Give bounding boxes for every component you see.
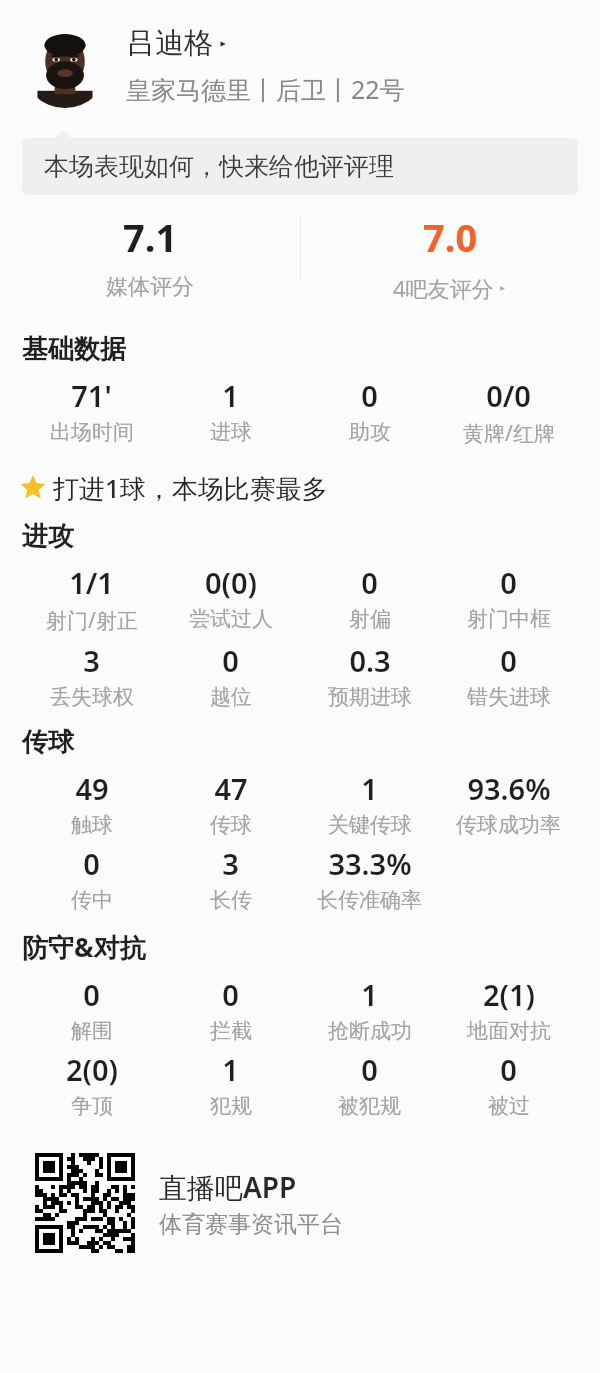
button[interactable]: 吕迪格: [0, 0, 600, 130]
staticText: 直播吧APP: [159, 1168, 297, 1206]
staticText: 33.3%: [328, 844, 412, 883]
staticText: 出场时间: [50, 419, 134, 445]
staticText: 1/1: [69, 563, 114, 602]
staticText: 触球: [71, 812, 113, 838]
staticText: 7.0: [423, 211, 478, 263]
staticText: 射门/射正: [46, 606, 138, 635]
staticText: 0: [361, 376, 378, 415]
staticText: 解围: [71, 1018, 113, 1044]
staticText: 传中: [71, 887, 113, 913]
button[interactable]: 7.1: [0, 211, 300, 315]
staticText: 3: [222, 844, 239, 883]
staticText: 0/0: [486, 376, 531, 415]
staticText: 射门中框: [467, 606, 551, 632]
staticText: 射偏: [349, 606, 391, 632]
staticText: 错失进球: [467, 684, 551, 710]
staticText: 传球: [22, 726, 74, 759]
staticText: 71': [71, 376, 112, 415]
staticText: 黄牌/红牌: [463, 419, 555, 448]
staticText: 丢失球权: [50, 684, 134, 710]
staticText: 本场表现如何，快来给他评评理: [44, 151, 394, 182]
staticText: 0: [222, 641, 239, 680]
staticText: 0: [83, 975, 100, 1014]
staticText: 2(0): [66, 1050, 118, 1089]
staticText: 防守&对抗: [22, 929, 146, 965]
staticText: 尝试过人: [189, 606, 273, 632]
staticText: 0: [500, 563, 517, 602]
staticText: 进攻: [22, 520, 74, 553]
staticText: 长传: [210, 887, 252, 913]
staticText: 1: [361, 769, 378, 808]
staticText: 93.6%: [467, 769, 551, 808]
staticText: 1: [222, 376, 239, 415]
staticText: 打进1球，本场比赛最多: [53, 470, 328, 506]
staticText: 0: [500, 641, 517, 680]
staticText: 0: [500, 1050, 517, 1089]
staticText: 犯规: [210, 1093, 252, 1119]
staticText: 1: [222, 1050, 239, 1089]
button[interactable]: 7.0: [300, 211, 600, 315]
staticText: 长传准确率: [317, 887, 422, 913]
staticText: 4吧友评分: [393, 273, 494, 303]
staticText: 关键传球: [328, 812, 412, 838]
staticText: 被犯规: [338, 1093, 401, 1119]
staticText: 0: [83, 844, 100, 883]
staticText: 预期进球: [328, 684, 412, 710]
staticText: 媒体评分: [106, 273, 194, 301]
staticText: 0: [361, 563, 378, 602]
staticText: 助攻: [349, 419, 391, 445]
staticText: 被过: [488, 1093, 530, 1119]
staticText: 皇家马德里丨后卫丨22号: [126, 72, 405, 106]
staticText: 传球成功率: [456, 812, 561, 838]
staticText: 3: [83, 641, 100, 680]
staticText: 0(0): [205, 563, 257, 602]
staticText: 2(1): [483, 975, 535, 1014]
staticText: 49: [75, 769, 109, 808]
staticText: 0.3: [349, 641, 391, 680]
staticText: 拦截: [210, 1018, 252, 1044]
button[interactable]: Highlight: [20, 470, 600, 506]
staticText: 争顶: [71, 1093, 113, 1119]
staticText: 抢断成功: [328, 1018, 412, 1044]
staticText: 吕迪格: [126, 25, 213, 62]
staticText: 7.1: [123, 211, 178, 263]
staticText: 1: [361, 975, 378, 1014]
staticText: 体育赛事资讯平台: [159, 1210, 343, 1239]
button[interactable]: 本场表现如何，快来给他评评理: [22, 138, 578, 195]
staticText: 传球: [210, 812, 252, 838]
staticText: 越位: [210, 684, 252, 710]
staticText: 基础数据: [22, 333, 126, 366]
other: Highlight: [20, 475, 46, 501]
staticText: 进球: [210, 419, 252, 445]
staticText: 0: [361, 1050, 378, 1089]
staticText: 0: [222, 975, 239, 1014]
staticText: 地面对抗: [467, 1018, 551, 1044]
staticText: 47: [214, 769, 248, 808]
